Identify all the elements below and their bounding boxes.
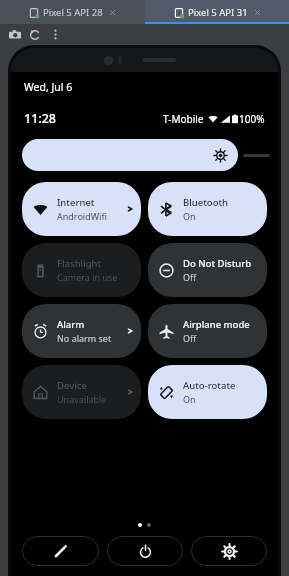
staticText: Wed, Jul 6	[24, 80, 73, 94]
button[interactable]: Pixel 5 API 28	[0, 0, 145, 24]
button[interactable]: Do Not Disturb	[148, 243, 267, 297]
button[interactable]: Power	[107, 536, 183, 566]
staticText: Alarm	[57, 318, 85, 331]
staticText: Airplane mode	[183, 318, 250, 331]
staticText: Pixel 5 API 28	[43, 6, 103, 19]
staticText: Do Not Disturb	[183, 257, 252, 270]
button[interactable]: Flashlight	[22, 243, 141, 297]
button[interactable]: Brightness	[22, 139, 238, 171]
button[interactable]: Edit	[22, 536, 99, 566]
staticText: On	[183, 393, 196, 405]
staticText: No alarm set	[57, 332, 112, 344]
staticText: Flashlight	[57, 257, 102, 270]
staticText: Off	[183, 271, 197, 283]
staticText: Pixel 5 API 31	[188, 6, 248, 19]
staticText: 11:28	[24, 110, 57, 127]
staticText: Off	[183, 332, 197, 344]
button[interactable]: Airplane mode	[148, 304, 267, 358]
staticText: Camera in use	[57, 271, 118, 283]
button[interactable]: Settings	[191, 536, 267, 566]
button[interactable]: Device controls	[22, 365, 141, 419]
button[interactable]: Alarm	[22, 304, 141, 358]
button[interactable]: Screenshot	[6, 26, 23, 43]
staticText: Internet	[57, 196, 95, 209]
button[interactable]: Pixel 5 API 31	[145, 0, 289, 24]
staticText: T-Mobile	[163, 112, 204, 126]
staticText: Unavailable	[57, 393, 107, 405]
button[interactable]: Auto-rotate	[148, 365, 267, 419]
button[interactable]: Internet	[22, 182, 141, 236]
staticText: Bluetooth	[183, 196, 229, 209]
staticText: Device controls	[57, 379, 126, 392]
staticText: AndroidWifi	[57, 210, 107, 222]
button[interactable]: Rotate	[26, 26, 43, 43]
staticText: 100%	[239, 112, 265, 126]
staticText: Auto-rotate	[183, 379, 236, 392]
staticText: On	[183, 210, 196, 222]
button[interactable]: Bluetooth	[148, 182, 267, 236]
button[interactable]: More options	[48, 27, 63, 42]
